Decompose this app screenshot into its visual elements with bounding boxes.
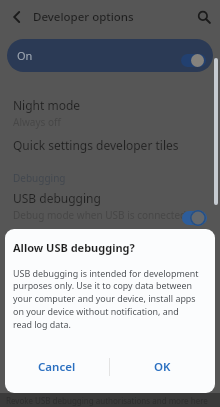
button[interactable]: USB debugging — [0, 190, 220, 222]
staticText: OK — [154, 359, 171, 375]
staticText: Debug mode when USB is connected — [13, 208, 187, 222]
button[interactable]: Cancel — [5, 341, 109, 393]
staticText: Quick settings developer tiles — [13, 137, 179, 153]
staticText: Cancel — [38, 359, 76, 375]
staticText: USB debugging — [13, 190, 101, 206]
button[interactable]: OK — [110, 341, 215, 393]
staticText: On — [17, 48, 33, 63]
staticText: Night mode — [13, 97, 81, 113]
button[interactable] — [0, 0, 33, 33]
button[interactable] — [187, 0, 220, 33]
button[interactable]: Night mode — [0, 97, 220, 129]
staticText: Debugging — [13, 171, 66, 185]
button[interactable]: Quick settings developer tiles — [0, 137, 220, 153]
staticText: USB debugging is intended for developmen… — [13, 267, 199, 331]
staticText: Revoke USB debugging authorisations and … — [6, 395, 208, 406]
button[interactable]: On — [7, 39, 213, 72]
staticText: Developer options — [33, 9, 134, 25]
staticText: Always off — [13, 115, 61, 129]
staticText: Allow USB debugging? — [13, 240, 135, 255]
